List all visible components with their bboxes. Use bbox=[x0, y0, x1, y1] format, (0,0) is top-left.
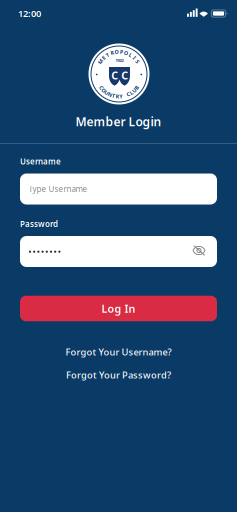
staticText: B bbox=[135, 84, 139, 91]
staticText: L bbox=[130, 89, 133, 96]
staticText: C bbox=[121, 68, 128, 82]
staticText: N bbox=[108, 91, 112, 98]
staticText: U bbox=[132, 87, 136, 94]
staticText: R bbox=[116, 93, 119, 100]
staticText: P bbox=[120, 48, 123, 55]
staticText: O bbox=[102, 87, 106, 94]
staticText: 12:00 bbox=[18, 7, 41, 20]
staticText: T bbox=[106, 51, 109, 58]
button[interactable]: Username text field bbox=[20, 173, 217, 204]
staticText: E bbox=[102, 54, 105, 61]
staticText: U bbox=[105, 89, 109, 96]
staticText: M bbox=[98, 58, 103, 65]
staticText: O bbox=[124, 49, 128, 56]
staticText: T bbox=[112, 92, 115, 99]
staticText: Forgot Your Username? bbox=[65, 346, 171, 358]
staticText: C bbox=[111, 68, 118, 82]
staticText: Type Username bbox=[28, 184, 87, 194]
button[interactable]: Password text field bbox=[20, 236, 217, 267]
button[interactable]: Forgot Your Username? bbox=[65, 346, 171, 358]
staticText: Password bbox=[20, 219, 58, 229]
staticText: 1922 bbox=[115, 58, 123, 63]
staticText: S bbox=[136, 58, 139, 65]
staticText: L bbox=[129, 51, 132, 58]
staticText: Forgot Your Password? bbox=[66, 369, 171, 381]
staticText: Log In bbox=[101, 301, 135, 316]
staticText: O bbox=[115, 48, 119, 55]
staticText: Member Login bbox=[75, 113, 161, 129]
staticText: R bbox=[110, 49, 113, 56]
staticText: Y bbox=[119, 93, 122, 100]
staticText: I bbox=[133, 54, 135, 61]
staticText: Username bbox=[20, 156, 61, 167]
staticText: C bbox=[127, 91, 130, 98]
button[interactable]: Log In bbox=[20, 296, 217, 321]
button[interactable]: Show password bbox=[192, 245, 206, 256]
button[interactable]: Forgot Your Password? bbox=[66, 369, 171, 381]
staticText: C bbox=[100, 84, 103, 91]
